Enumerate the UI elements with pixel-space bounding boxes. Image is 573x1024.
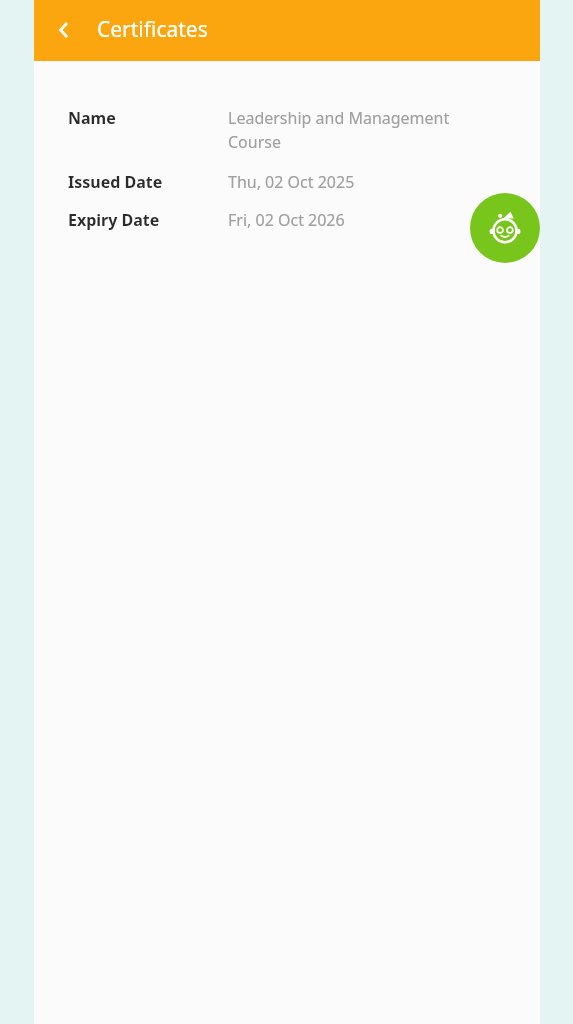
staticText: Thu, 02 Oct 2025 <box>228 171 468 193</box>
staticText: Expiry Date <box>68 209 228 231</box>
button[interactable]: Expiry Date <box>34 207 540 233</box>
staticText: Issued Date <box>68 171 228 193</box>
button[interactable]: Back <box>42 8 86 52</box>
staticText: Certificates <box>97 15 208 44</box>
staticText: Leadership and Management Course <box>228 107 468 153</box>
button[interactable]: Name <box>34 105 540 155</box>
staticText: Fri, 02 Oct 2026 <box>228 209 468 231</box>
button[interactable]: Open chat assistant <box>470 193 540 263</box>
button[interactable]: Issued Date <box>34 169 540 195</box>
staticText: Name <box>68 107 228 129</box>
